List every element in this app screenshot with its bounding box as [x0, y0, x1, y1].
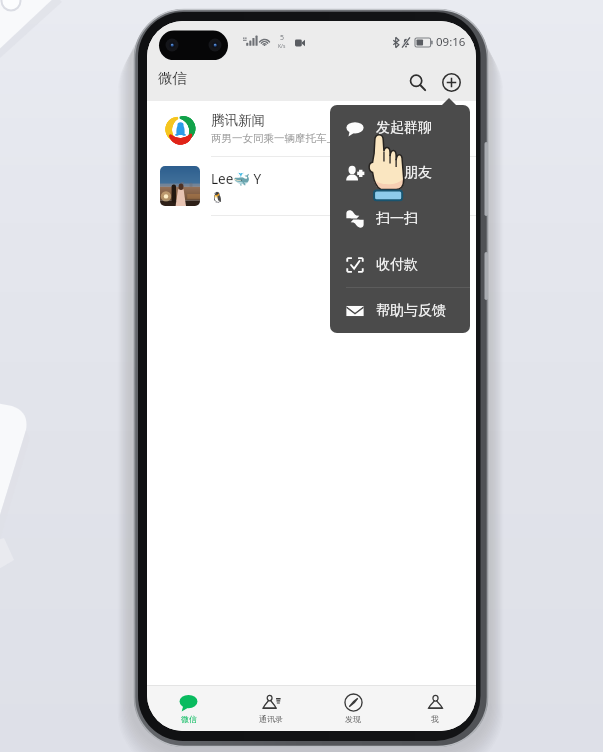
- button[interactable]: Search: [403, 68, 431, 96]
- staticText: 通讯录: [259, 714, 283, 724]
- staticText: 我: [431, 714, 439, 724]
- staticText: 帮助与反馈: [376, 302, 446, 320]
- button[interactable]: More: [437, 68, 465, 96]
- button[interactable]: 发起群聊: [330, 105, 470, 150]
- staticText: 微信: [158, 69, 187, 87]
- button[interactable]: 收付款: [330, 242, 470, 287]
- staticText: 收付款: [376, 256, 418, 274]
- button[interactable]: 帮助与反馈: [330, 288, 470, 333]
- button[interactable]: Lee🐳 Y: [147, 157, 476, 216]
- button[interactable]: 微信: [147, 686, 230, 731]
- staticText: 微信: [181, 714, 197, 724]
- button[interactable]: 腾讯新闻: [147, 101, 476, 157]
- staticText: K/s: [278, 43, 286, 50]
- button[interactable]: 添加朋友: [330, 150, 470, 196]
- staticText: 🐧: [211, 191, 225, 203]
- button[interactable]: 通讯录: [230, 686, 312, 731]
- staticText: 添加朋友: [376, 164, 432, 182]
- staticText: 扫一扫: [376, 210, 418, 228]
- button[interactable]: 扫一扫: [330, 196, 470, 242]
- staticText: 09:16: [436, 34, 466, 50]
- staticText: Lee🐳 Y: [211, 170, 262, 188]
- staticText: 5: [280, 33, 285, 43]
- button[interactable]: 我: [394, 686, 476, 731]
- staticText: 发起群聊: [376, 119, 432, 137]
- staticText: 两男一女同乘一辆摩托车上高速: [211, 132, 358, 145]
- staticText: 发现: [345, 714, 361, 724]
- staticText: 腾讯新闻: [211, 112, 265, 129]
- button[interactable]: 发现: [312, 686, 394, 731]
